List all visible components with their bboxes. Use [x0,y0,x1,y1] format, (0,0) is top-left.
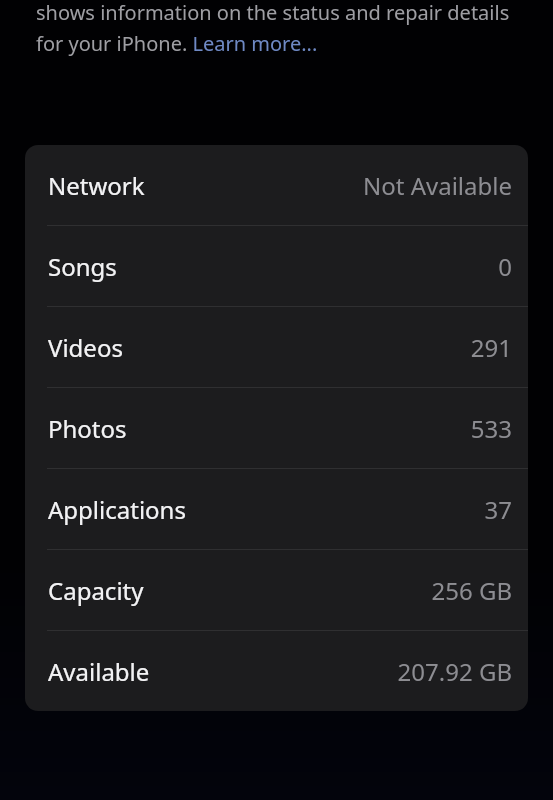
button[interactable]: Capacity [25,550,528,630]
button[interactable]: Videos [25,307,528,387]
staticText: 207.92 GB [397,655,512,688]
staticText: Parts and service history is collected b… [36,0,523,57]
staticText: Capacity [48,574,144,607]
staticText: 256 GB [431,574,512,607]
staticText: Network [48,169,145,202]
staticText: 533 [470,412,512,445]
button[interactable]: Applications [25,469,528,549]
button[interactable]: Available [25,631,528,711]
staticText: 0 [498,250,512,283]
staticText: 37 [484,493,512,526]
staticText: Applications [48,493,186,526]
staticText: Available [48,655,150,688]
button[interactable]: Photos [25,388,528,468]
button[interactable]: Network [25,145,528,225]
staticText: Not Available [363,169,512,202]
staticText: Photos [48,412,127,445]
staticText: 291 [470,331,512,364]
staticText: Videos [48,331,123,364]
button[interactable]: Songs [25,226,528,306]
staticText: Songs [48,250,117,283]
